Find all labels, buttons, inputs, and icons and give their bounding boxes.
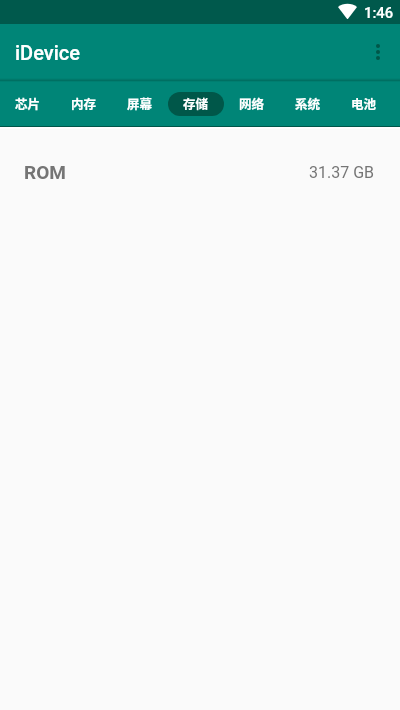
staticText: 1:46 <box>364 4 394 21</box>
button[interactable]: 内存 <box>57 80 111 125</box>
button[interactable]: More options <box>352 28 400 76</box>
button[interactable]: 网络 <box>225 80 279 125</box>
staticText: 屏幕 <box>127 94 153 112</box>
staticText: iDevice <box>15 41 81 64</box>
button[interactable]: 系统 <box>281 80 335 125</box>
staticText: 电池 <box>351 94 377 112</box>
staticText: 系统 <box>295 94 321 112</box>
staticText: 31.37 GB <box>309 163 375 182</box>
button[interactable]: ROM <box>0 150 400 194</box>
button[interactable]: 电池 <box>337 80 391 125</box>
staticText: 芯片 <box>15 94 41 112</box>
button[interactable]: 存储 <box>169 80 223 125</box>
staticText: 存储 <box>183 94 209 112</box>
staticText: ROM <box>24 161 66 183</box>
staticText: 内存 <box>71 94 97 112</box>
staticText: 网络 <box>239 94 265 112</box>
button[interactable]: 芯片 <box>1 80 55 125</box>
button[interactable]: 屏幕 <box>113 80 167 125</box>
